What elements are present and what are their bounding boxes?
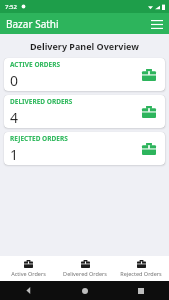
- button[interactable]: ACTIVE ORDERS: [4, 58, 165, 91]
- staticText: Bazar Sathi: [6, 17, 59, 31]
- button[interactable]: Active Orders: [0, 256, 57, 281]
- button[interactable]: Rejected Orders: [113, 256, 169, 281]
- staticText: DELIVERED ORDERS: [10, 97, 73, 106]
- staticText: Active Orders: [11, 270, 46, 277]
- button[interactable]: Delivered Orders: [57, 256, 113, 281]
- other: Home: [82, 288, 88, 294]
- staticText: 1: [10, 145, 19, 164]
- staticText: REJECTED ORDERS: [10, 134, 68, 143]
- button[interactable]: REJECTED ORDERS: [4, 132, 165, 165]
- staticText: Delivered Orders: [63, 270, 107, 277]
- button[interactable]: Menu: [149, 16, 165, 32]
- staticText: 7:52: [5, 3, 17, 11]
- staticText: Rejected Orders: [120, 270, 162, 277]
- staticText: Delivery Panel Overview: [0, 40, 169, 52]
- staticText: ACTIVE ORDERS: [10, 60, 61, 69]
- staticText: 4: [10, 108, 19, 127]
- staticText: 0: [10, 71, 19, 90]
- button[interactable]: DELIVERED ORDERS: [4, 95, 165, 128]
- other: Back: [25, 287, 32, 294]
